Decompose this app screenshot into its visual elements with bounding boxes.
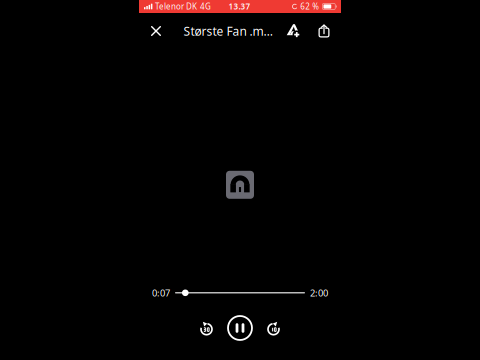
staticText: Største Fan .m… <box>183 23 272 39</box>
staticText: 0:07 <box>152 287 170 299</box>
button[interactable]: Skip forward 10 seconds <box>256 315 291 341</box>
button[interactable]: Add to Drive <box>280 18 306 44</box>
staticText: 4G <box>200 1 211 12</box>
button[interactable]: Pause <box>224 315 256 341</box>
staticText: 2:00 <box>310 287 328 299</box>
staticText: Telenor DK <box>155 1 197 12</box>
button[interactable]: Share <box>307 18 341 44</box>
button[interactable]: Skip back 30 seconds <box>189 315 224 341</box>
staticText: 62 % <box>300 1 319 12</box>
button[interactable]: Close <box>139 18 173 44</box>
staticText: 13.37 <box>228 1 250 12</box>
